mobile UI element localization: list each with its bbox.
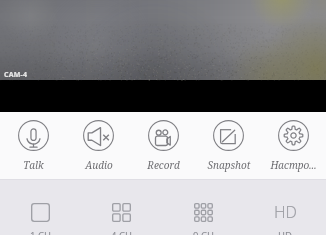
button[interactable]: Settings bbox=[261, 112, 326, 180]
staticText: CAM-4 bbox=[4, 70, 28, 80]
button[interactable]: Talk bbox=[0, 112, 66, 180]
button[interactable]: 1 CH bbox=[0, 180, 81, 235]
staticText: Talk bbox=[23, 158, 44, 172]
staticText: Настро... bbox=[270, 158, 317, 172]
button[interactable]: Record bbox=[131, 112, 196, 180]
staticText: 1 CH bbox=[30, 229, 51, 235]
button[interactable]: HD bbox=[244, 180, 326, 235]
button[interactable]: Audio mute bbox=[66, 112, 131, 180]
staticText: HD bbox=[274, 201, 297, 223]
button[interactable]: 4 CH bbox=[81, 180, 162, 235]
staticText: 4 CH bbox=[111, 229, 132, 235]
button[interactable]: 9 CH bbox=[162, 180, 244, 235]
staticText: Record bbox=[147, 158, 180, 172]
staticText: HD bbox=[278, 229, 292, 235]
staticText: Audio bbox=[85, 158, 113, 172]
button[interactable]: Snapshot bbox=[196, 112, 261, 180]
staticText: 9 CH bbox=[193, 229, 214, 235]
staticText: Snapshot bbox=[207, 158, 251, 172]
